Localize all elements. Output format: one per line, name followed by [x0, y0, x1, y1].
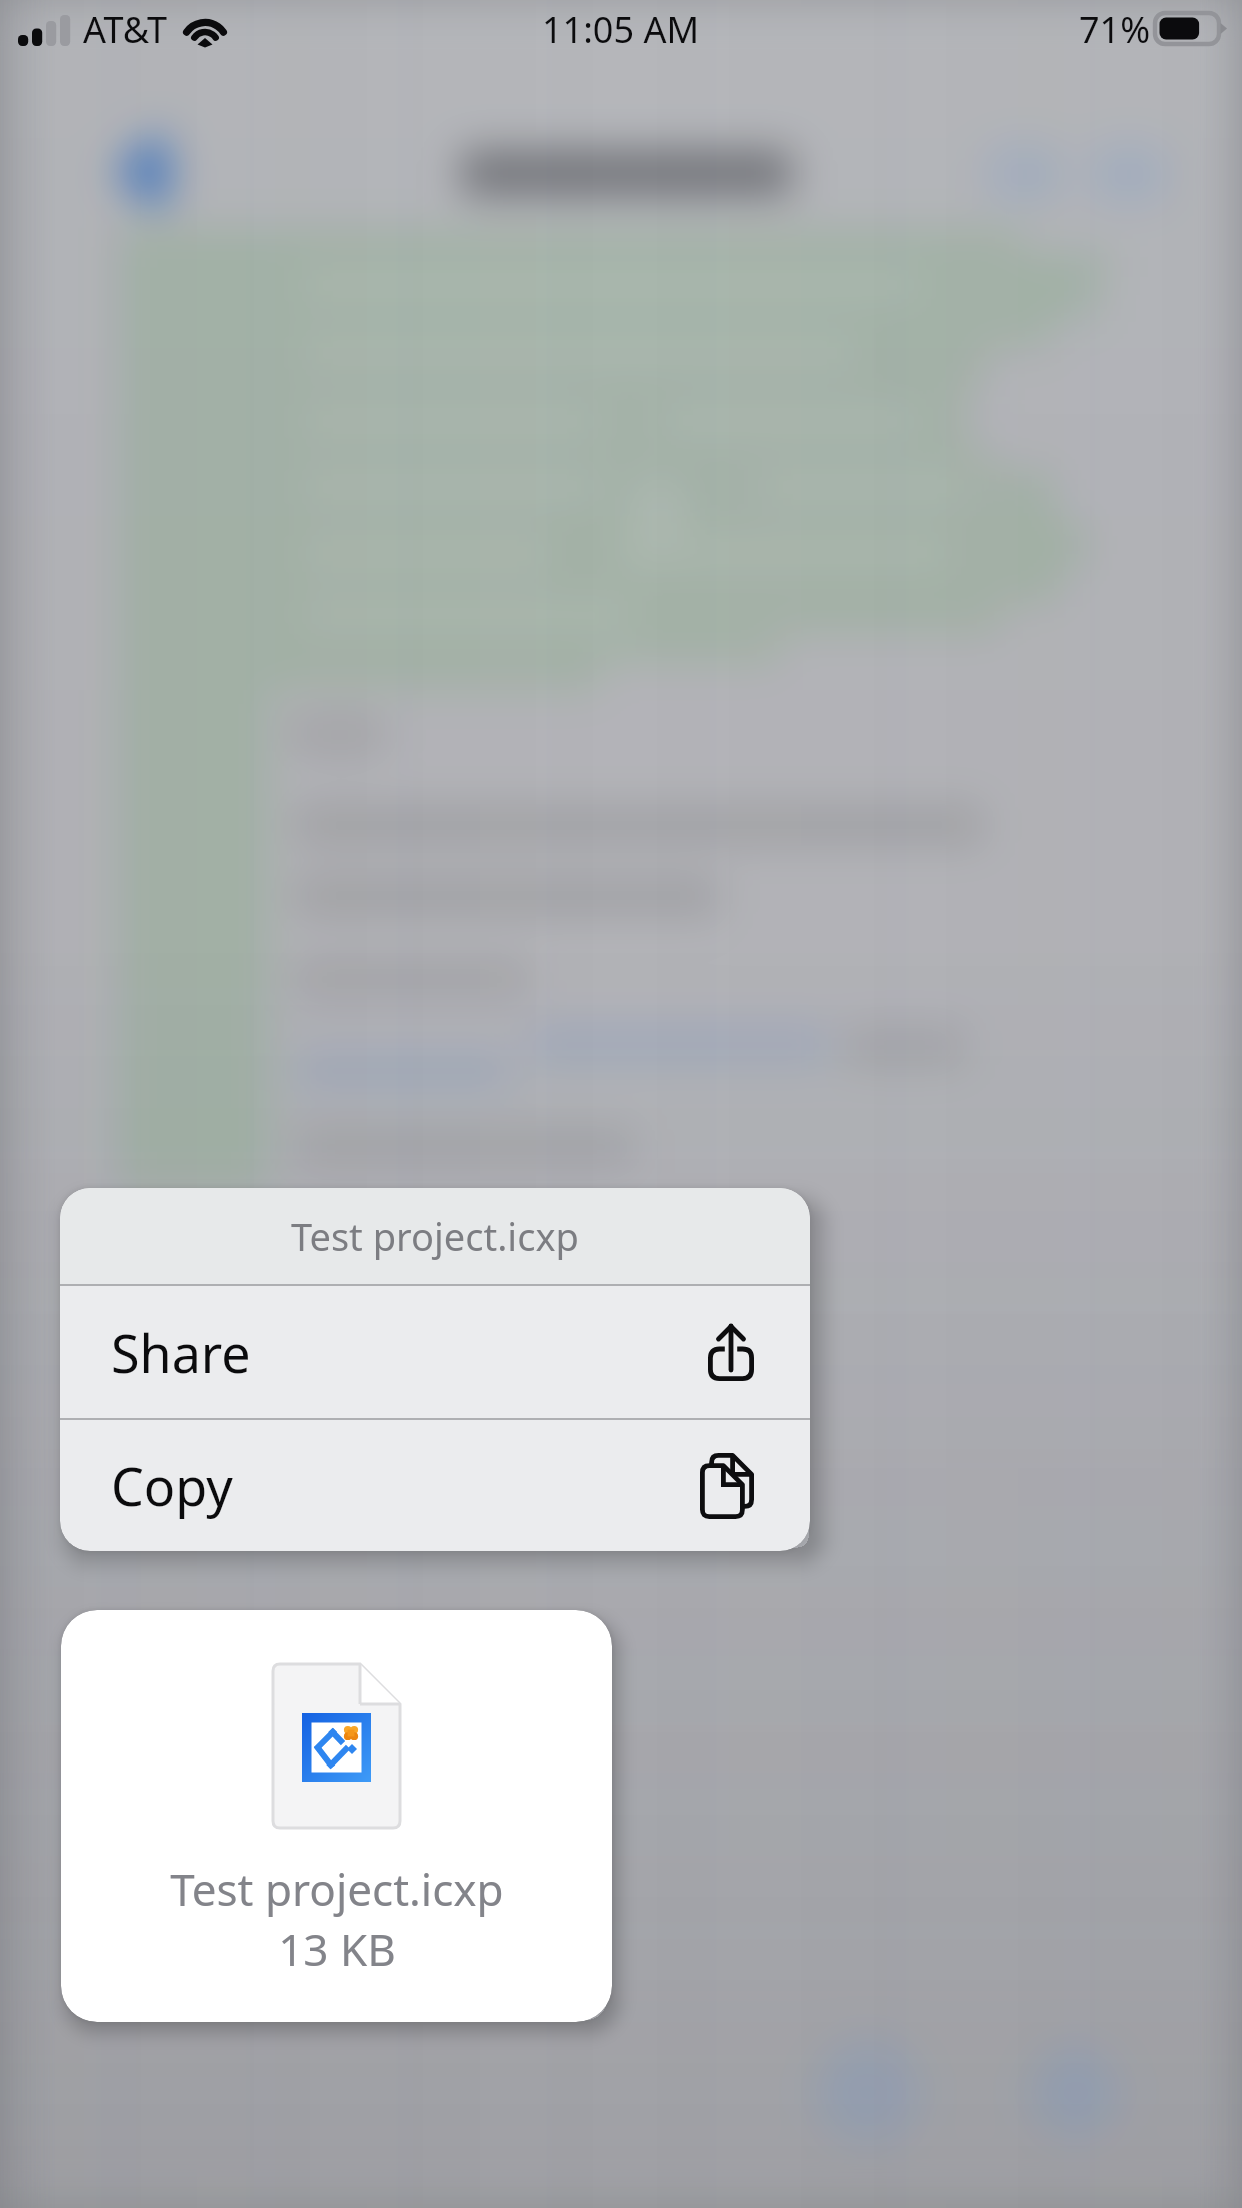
staticText: 13 KB — [278, 1919, 396, 1979]
button[interactable]: Share — [60, 1286, 810, 1418]
button[interactable]: Copy — [60, 1420, 810, 1551]
staticText: Copy — [111, 1450, 233, 1521]
other: Battery 71 percent — [1153, 11, 1229, 47]
staticText: Test project.icxp — [170, 1859, 504, 1919]
staticText: 11:05 AM — [542, 5, 700, 54]
staticText: AT&T — [83, 5, 167, 54]
staticText: Share — [111, 1317, 251, 1388]
other: Cellular signal — [18, 14, 70, 46]
button[interactable]: Dismiss menu — [0, 0, 1242, 2208]
button[interactable]: Test project.icxp — [61, 1610, 612, 2022]
staticText: 71% — [1079, 5, 1151, 54]
other: Copy — [700, 1453, 754, 1519]
staticText: Test project.icxp — [291, 1210, 579, 1262]
other: Share — [708, 1323, 754, 1381]
other: Wi-Fi — [182, 12, 230, 46]
